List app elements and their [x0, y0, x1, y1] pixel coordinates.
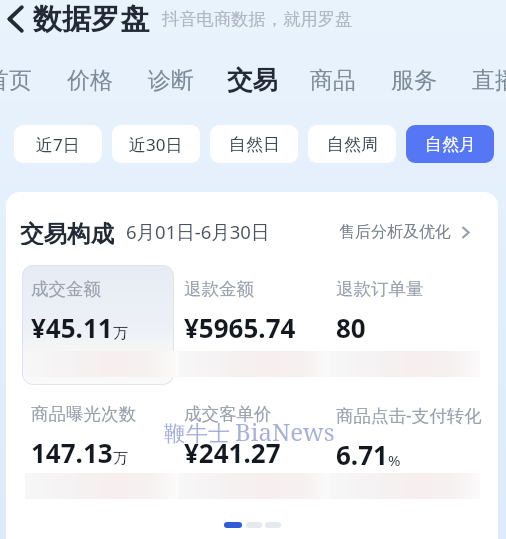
button[interactable]: 诊断: [131, 62, 211, 98]
button[interactable]: 交易构成: [20, 219, 270, 245]
staticText: 抖音电商数据，就用罗盘: [162, 8, 353, 30]
staticText: 商品点击-支付转化: [336, 403, 482, 427]
button[interactable]: 售后分析及优化: [339, 222, 472, 242]
staticText: ¥45.11: [31, 310, 113, 345]
button[interactable]: 直播: [455, 62, 506, 98]
button[interactable]: 商品: [293, 62, 373, 98]
staticText: 147.13: [31, 435, 113, 470]
staticText: 万: [113, 449, 128, 468]
staticText: 直播: [472, 66, 506, 95]
staticText: 数据罗盘: [33, 1, 149, 38]
button[interactable]: [22, 265, 174, 385]
staticText: 自然月: [425, 134, 476, 155]
staticText: 万: [113, 324, 128, 343]
button[interactable]: 退款订单量: [336, 278, 488, 345]
button[interactable]: 近30日: [112, 125, 200, 163]
staticText: 首页: [0, 66, 32, 95]
button[interactable]: 交易: [212, 62, 292, 98]
button[interactable]: 退款金额: [184, 278, 336, 345]
staticText: ¥241.27: [184, 435, 281, 470]
staticText: BiaNews: [235, 415, 335, 448]
button[interactable]: 首页: [0, 62, 49, 98]
button[interactable]: 自然月: [406, 125, 494, 163]
staticText: 退款金额: [184, 278, 254, 300]
staticText: %: [388, 450, 401, 470]
staticText: ¥5965.74: [184, 310, 296, 345]
staticText: 交易: [227, 64, 278, 96]
staticText: 近7日: [36, 133, 80, 156]
button[interactable]: Back: [0, 4, 30, 34]
staticText: 服务: [391, 66, 437, 95]
staticText: 价格: [67, 66, 113, 95]
staticText: 近30日: [129, 133, 183, 156]
button[interactable]: 自然周: [308, 125, 396, 163]
button[interactable]: 价格: [50, 62, 130, 98]
staticText: 商品曝光次数: [31, 403, 136, 425]
button[interactable]: 商品点击-支付转化: [336, 403, 488, 472]
staticText: 80: [336, 310, 366, 345]
button[interactable]: 成交客单价: [184, 403, 336, 470]
staticText: 售后分析及优化: [339, 222, 451, 242]
button[interactable]: 成交金额: [31, 278, 183, 345]
button[interactable]: 商品曝光次数: [31, 403, 183, 470]
staticText: 自然日: [229, 134, 280, 155]
staticText: 诊断: [148, 66, 194, 95]
staticText: 成交金额: [31, 278, 101, 300]
button[interactable]: 近7日: [14, 125, 102, 163]
button[interactable]: 自然日: [210, 125, 298, 163]
staticText: 6.71: [336, 437, 388, 472]
staticText: 交易构成: [20, 219, 114, 245]
staticText: 退款订单量: [336, 278, 424, 300]
staticText: 自然周: [327, 134, 378, 155]
staticText: 鞭牛士: [164, 420, 230, 448]
button[interactable]: 服务: [374, 62, 454, 98]
staticText: 6月01日-6月30日: [126, 219, 270, 244]
staticText: 商品: [310, 66, 356, 95]
staticText: 成交客单价: [184, 403, 272, 425]
